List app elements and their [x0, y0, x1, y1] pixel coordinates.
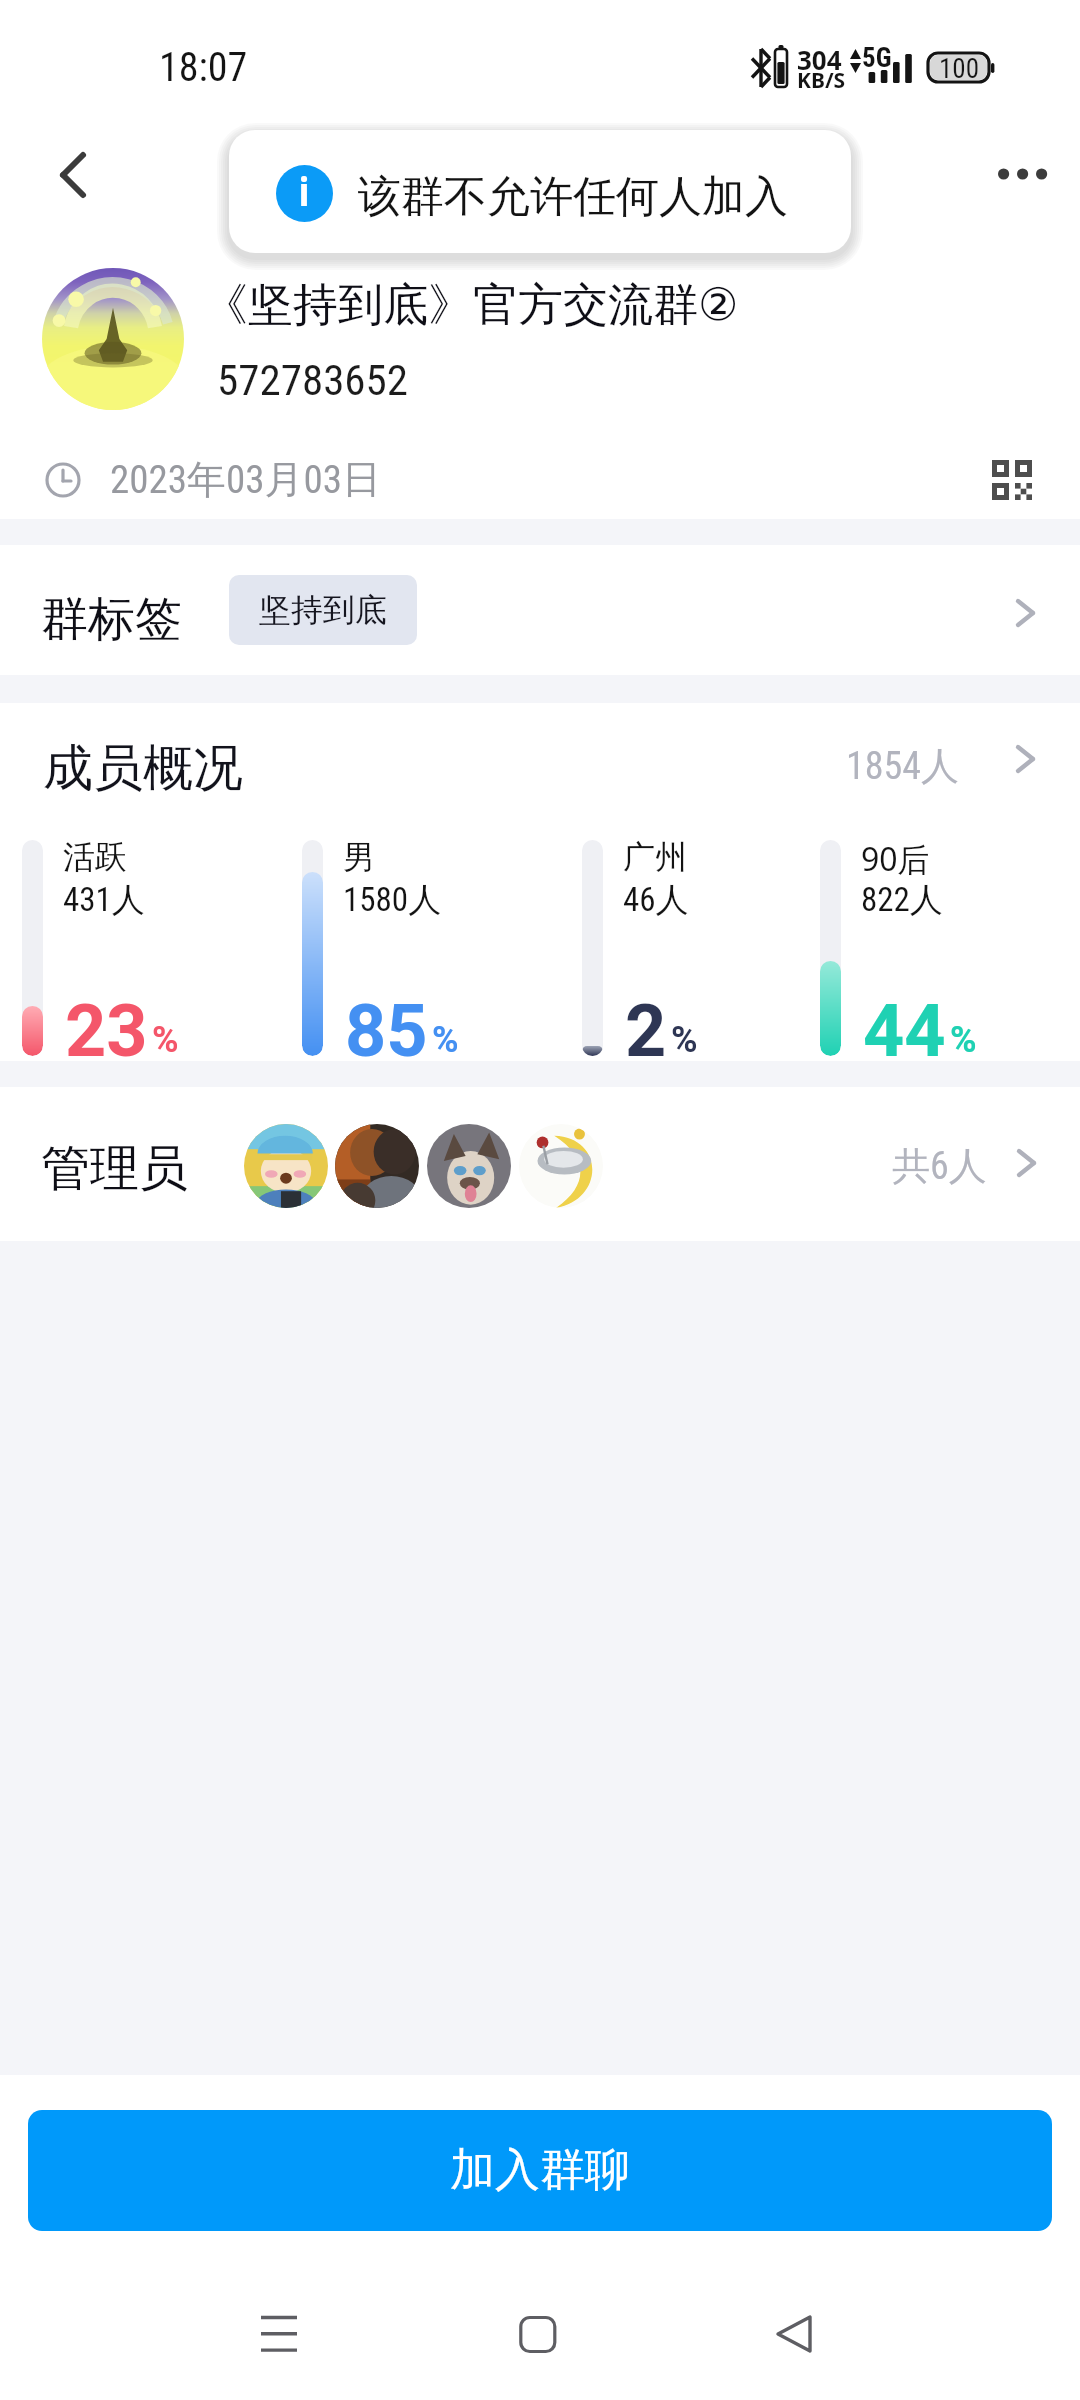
staticText: % [432, 1019, 459, 1061]
staticText: 100 [939, 53, 979, 85]
button[interactable]: 管理员 [0, 1087, 1080, 1241]
staticText: 85 [345, 989, 428, 1073]
staticText: i [299, 169, 310, 216]
staticText: 活跃 [63, 837, 127, 877]
staticText: 男 [343, 837, 375, 877]
staticText: 572783652 [217, 355, 409, 405]
staticText: 46人 [623, 879, 689, 921]
button[interactable]: 群标签 [0, 545, 1080, 675]
staticText: 广州 [623, 837, 687, 877]
staticText: 23 [65, 989, 148, 1073]
button[interactable]: i [229, 130, 851, 253]
staticText: % [152, 1019, 179, 1061]
staticText: % [950, 1019, 977, 1061]
staticText: 44 [863, 989, 946, 1073]
staticText: 2 [625, 989, 667, 1073]
button[interactable]: QR code [972, 440, 1052, 519]
staticText: 群标签 [41, 590, 182, 649]
staticText: 成员概况 [43, 737, 243, 800]
staticText: 2023年03月03日 [110, 455, 382, 504]
button[interactable]: Recent apps [239, 2291, 319, 2371]
staticText: 坚持到底 [259, 590, 387, 630]
staticText: 5G [862, 42, 892, 74]
staticText: KB/S [797, 66, 846, 95]
button[interactable]: 2023年03月03日 [0, 440, 1080, 519]
staticText: 管理员 [41, 1138, 188, 1200]
staticText: 822人 [861, 879, 943, 921]
staticText: 304 [797, 42, 842, 77]
staticText: 90后 [861, 837, 930, 881]
button[interactable]: Group avatar [42, 268, 184, 410]
staticText: 1854人 [846, 742, 960, 790]
staticText: 共6人 [892, 1142, 987, 1190]
staticText: 18:07 [159, 44, 248, 91]
staticText: % [671, 1019, 698, 1061]
staticText: 该群不允许任何人加入 [358, 170, 788, 224]
button[interactable]: Home [497, 2291, 577, 2371]
button[interactable]: Back [18, 130, 110, 222]
button[interactable]: 加入群聊 [28, 2110, 1052, 2231]
button[interactable]: 成员概况 [0, 703, 1080, 823]
staticText: 加入群聊 [450, 2142, 630, 2199]
staticText: 1580人 [343, 879, 442, 921]
staticText: 431人 [63, 879, 145, 921]
button[interactable]: More options [974, 130, 1064, 220]
staticText: 《坚持到底》官方交流群② [203, 277, 739, 334]
button[interactable]: Back [757, 2291, 837, 2371]
